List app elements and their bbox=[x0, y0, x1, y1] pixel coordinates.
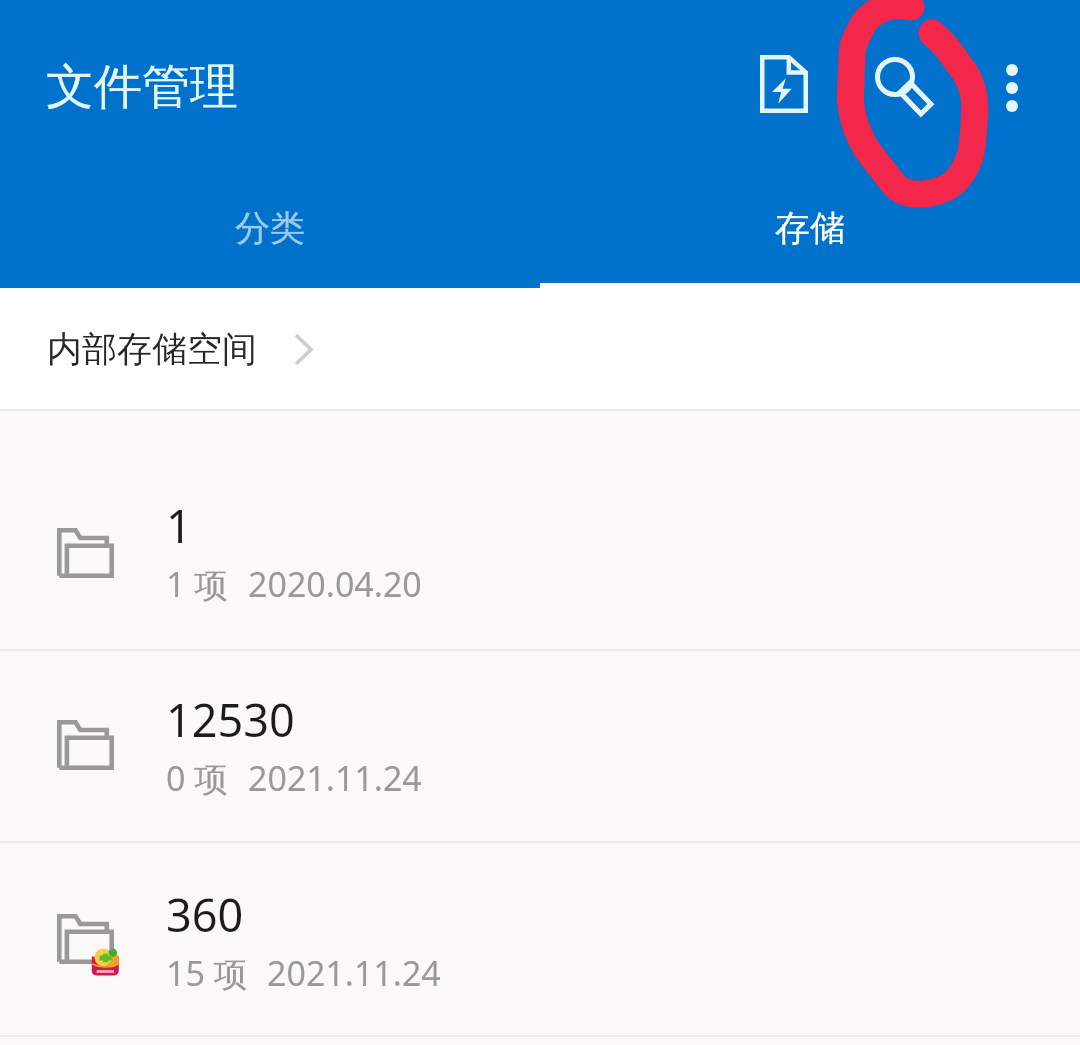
staticText: 360 bbox=[166, 884, 244, 945]
button[interactable]: 360 bbox=[0, 843, 1080, 1035]
staticText: 1 项 bbox=[166, 561, 229, 607]
staticText: 0 项 bbox=[166, 755, 229, 801]
button[interactable]: 存储 bbox=[540, 206, 1080, 288]
button[interactable]: Quick file transfer bbox=[736, 36, 832, 132]
button[interactable]: More options bbox=[964, 40, 1060, 136]
staticText: 12530 bbox=[166, 689, 295, 750]
staticText: 2020.04.20 bbox=[248, 561, 422, 607]
staticText: 存储 bbox=[775, 206, 845, 250]
staticText: 分类 bbox=[235, 206, 305, 250]
button[interactable]: 1 bbox=[0, 411, 1080, 649]
staticText: 内部存储空间 bbox=[47, 327, 257, 371]
staticText: 文件管理 bbox=[46, 57, 238, 117]
button[interactable]: Search bbox=[858, 40, 954, 136]
staticText: 2021.11.24 bbox=[267, 950, 441, 996]
button[interactable]: 内部存储空间 bbox=[0, 288, 1080, 409]
staticText: 2021.11.24 bbox=[248, 755, 422, 801]
staticText: 1 bbox=[166, 495, 192, 556]
button[interactable]: 分类 bbox=[0, 206, 540, 288]
button[interactable]: 12530 bbox=[0, 651, 1080, 841]
staticText: 15 项 bbox=[166, 950, 248, 996]
